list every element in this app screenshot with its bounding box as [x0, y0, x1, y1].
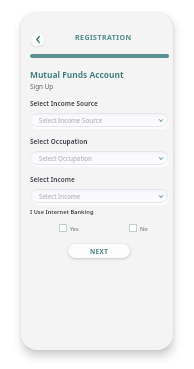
staticText: REGISTRATION	[75, 33, 132, 43]
staticText: Select Income	[39, 192, 159, 201]
staticText: Select Income Source	[30, 99, 98, 108]
button[interactable]: Back	[31, 33, 44, 46]
staticText: No	[140, 225, 148, 232]
staticText: Yes	[70, 225, 79, 232]
staticText: Select Occupation	[39, 154, 159, 163]
button[interactable]: Select Occupation	[30, 151, 168, 165]
button[interactable]: Yes	[59, 224, 79, 232]
staticText: NEXT	[90, 247, 109, 256]
button[interactable]: NEXT	[68, 244, 130, 258]
button[interactable]: Select Income	[30, 189, 168, 203]
button[interactable]: No	[129, 224, 148, 232]
staticText: Sign Up	[30, 82, 54, 91]
staticText: Select Income	[30, 175, 75, 184]
staticText: Select Income Source	[39, 116, 159, 125]
staticText: I Use Internet Banking	[30, 208, 94, 216]
staticText: Mutual Funds Account	[30, 69, 124, 80]
staticText: Select Occupation	[30, 137, 88, 146]
button[interactable]: Select Income Source	[30, 113, 168, 127]
